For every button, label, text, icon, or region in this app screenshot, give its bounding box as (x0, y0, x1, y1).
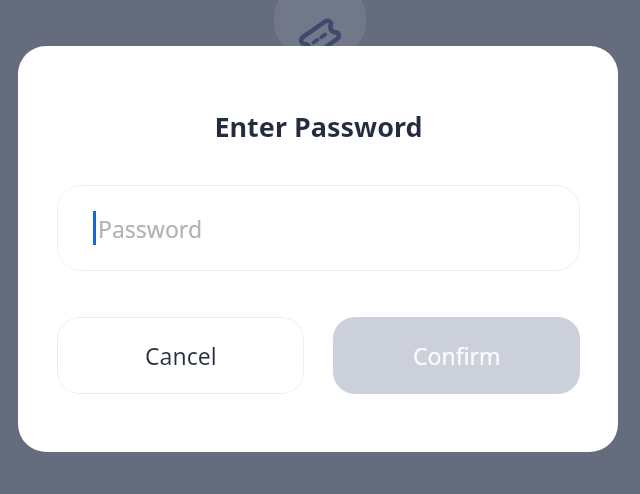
other: Ticket (274, 0, 366, 66)
staticText: Password (98, 213, 203, 244)
staticText: Confirm (413, 340, 501, 371)
staticText: Cancel (145, 340, 217, 371)
staticText: Enter Password (214, 108, 423, 145)
button[interactable]: Confirm (333, 317, 580, 394)
button[interactable]: Cancel (57, 317, 304, 394)
button[interactable]: Password (57, 185, 580, 271)
